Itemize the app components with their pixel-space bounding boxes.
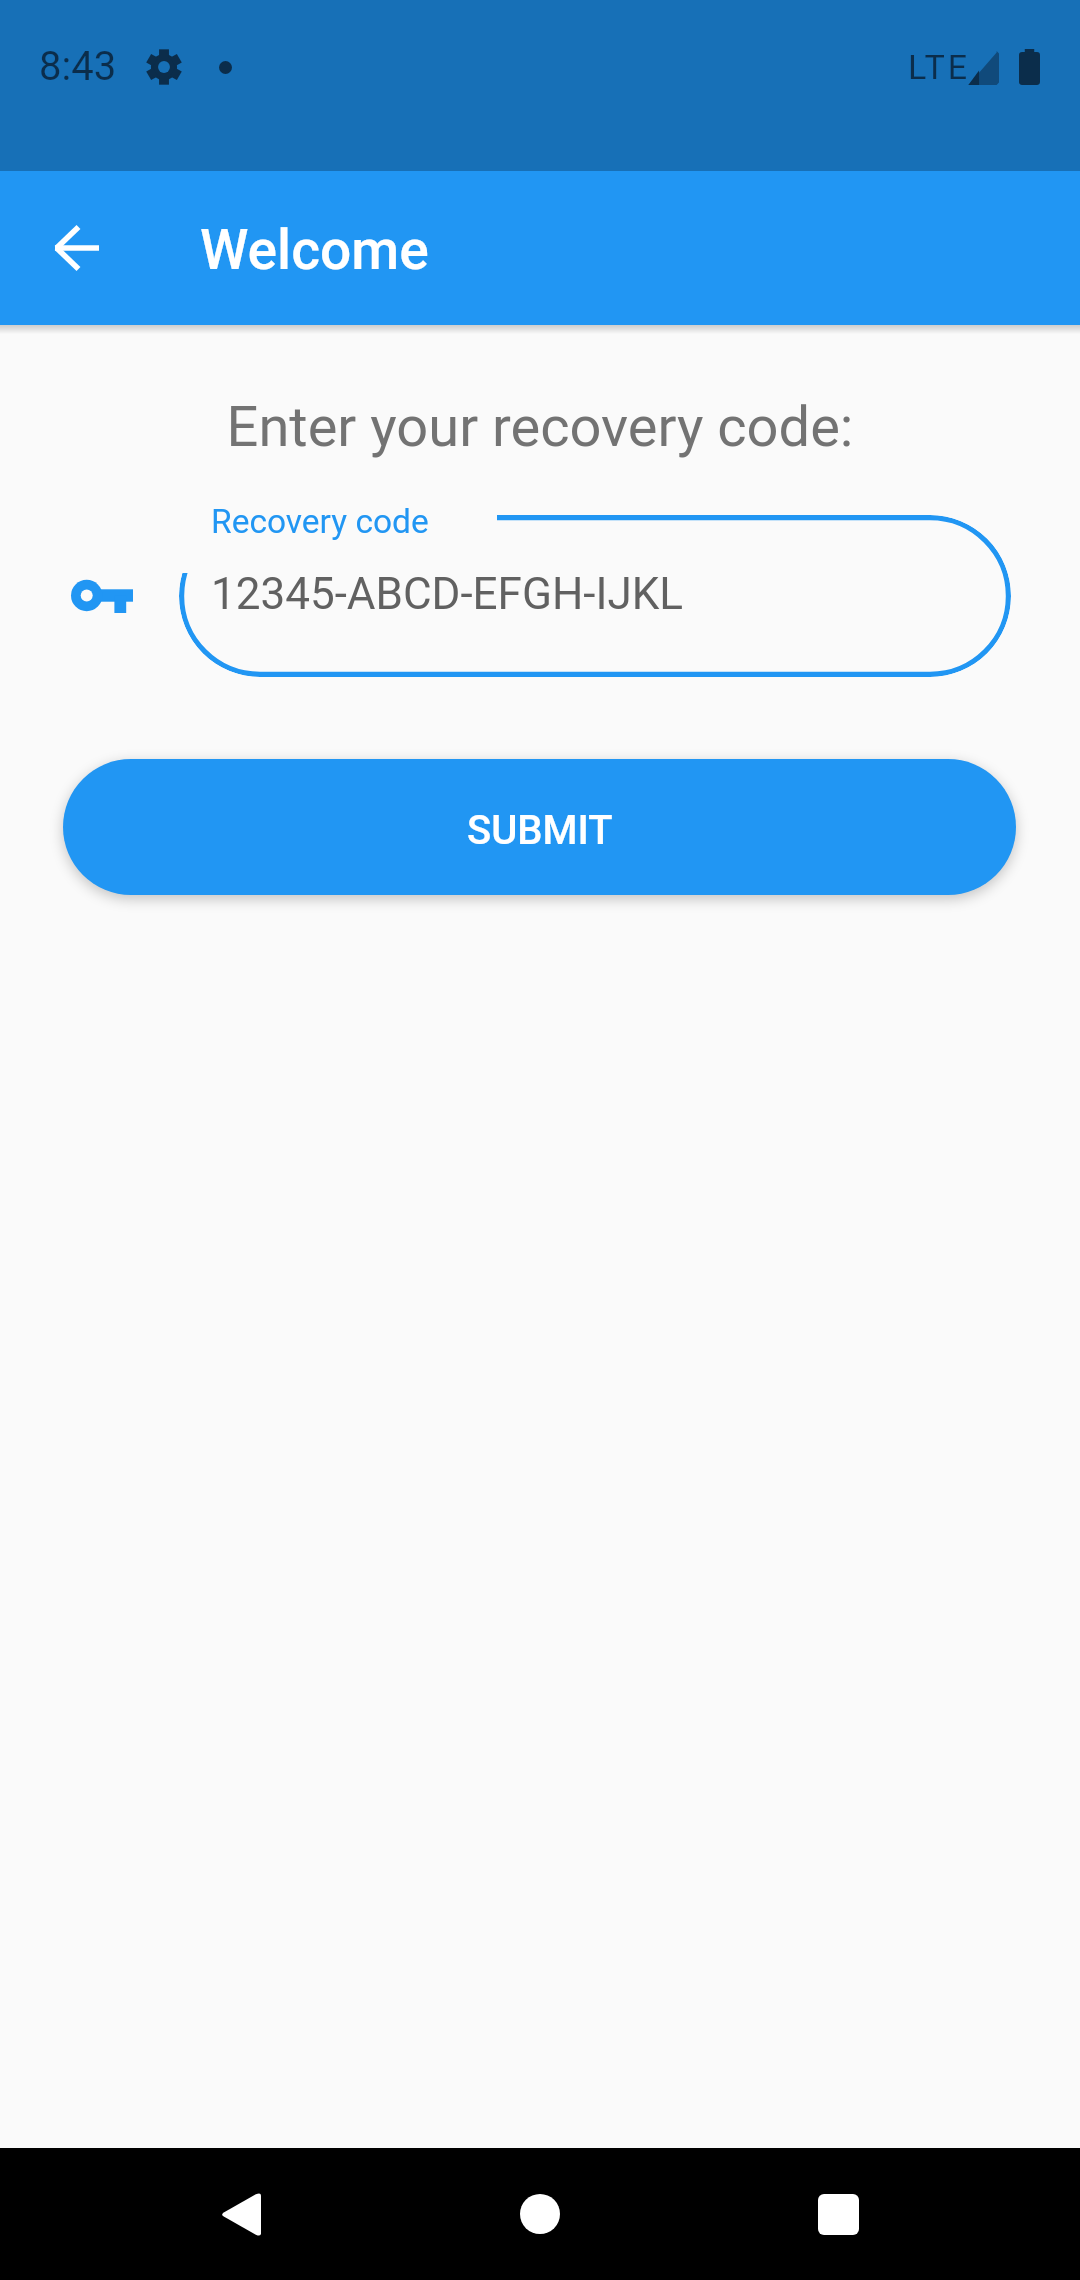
staticText: 8:43 xyxy=(39,43,117,90)
staticText: 12345-ABCD-EFGH-IJKL xyxy=(211,568,683,620)
button[interactable]: SUBMIT xyxy=(63,759,1016,895)
staticText: Recovery code xyxy=(211,502,429,541)
button[interactable]: 12345-ABCD-EFGH-IJKL xyxy=(179,515,1011,677)
button[interactable]: Recent apps xyxy=(783,2159,893,2269)
button[interactable]: Navigate up xyxy=(22,193,132,303)
staticText: SUBMIT xyxy=(467,807,613,854)
button[interactable]: Home xyxy=(485,2159,595,2269)
button[interactable]: Back xyxy=(185,2159,295,2269)
staticText: Enter your recovery code: xyxy=(0,394,1080,460)
staticText: Welcome xyxy=(200,218,429,282)
staticText: LTE xyxy=(908,47,970,87)
